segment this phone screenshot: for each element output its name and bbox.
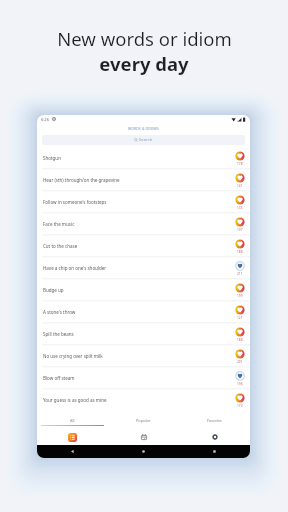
staticText: 141 bbox=[237, 184, 243, 188]
staticText: 107 bbox=[237, 228, 243, 232]
staticText: A stone's throw bbox=[43, 309, 76, 315]
staticText: Spill the beans bbox=[43, 331, 74, 337]
button[interactable]: Have a chip on one's shoulder bbox=[37, 257, 250, 279]
staticText: every day bbox=[99, 51, 189, 76]
button[interactable]: Follow in someone's footsteps bbox=[37, 191, 250, 213]
staticText: Favorite bbox=[207, 418, 222, 423]
staticText: Budge up bbox=[43, 287, 64, 293]
button[interactable]: All bbox=[37, 411, 108, 426]
button[interactable]: Popular bbox=[108, 411, 179, 426]
button[interactable]: Budge up bbox=[37, 279, 250, 301]
staticText: Search bbox=[139, 137, 153, 143]
staticText: 121 bbox=[237, 316, 243, 320]
button[interactable]: Hear (sth) through/on the grapevine bbox=[37, 169, 250, 191]
button[interactable]: Search bbox=[42, 135, 245, 145]
staticText: New words or idiom bbox=[57, 26, 232, 51]
staticText: Face the music bbox=[43, 221, 75, 227]
staticText: WORDS & IDIOMS bbox=[128, 126, 159, 130]
staticText: 135 bbox=[237, 206, 243, 210]
staticText: Blow off steam bbox=[43, 375, 75, 381]
button[interactable]: No use crying over spilt milk bbox=[37, 345, 250, 367]
staticText: Shotgun bbox=[43, 155, 61, 161]
staticText: Hear (sth) through/on the grapevine bbox=[43, 177, 120, 183]
button[interactable]: Home bbox=[108, 449, 179, 454]
button[interactable]: Spill the beans bbox=[37, 323, 250, 345]
button[interactable]: Settings bbox=[179, 429, 250, 445]
staticText: Your guess is as good as mine bbox=[43, 397, 107, 403]
staticText: 188 bbox=[237, 250, 243, 254]
button[interactable]: Favorite bbox=[179, 411, 250, 426]
staticText: Follow in someone's footsteps bbox=[43, 199, 107, 205]
staticText: 196 bbox=[237, 382, 243, 386]
staticText: Popular bbox=[136, 418, 151, 423]
button[interactable]: Cut to the chase bbox=[37, 235, 250, 257]
staticText: Have a chip on one's shoulder bbox=[43, 265, 107, 271]
staticText: No use crying over spilt milk bbox=[43, 353, 103, 359]
staticText: All bbox=[70, 418, 75, 423]
staticText: 211 bbox=[237, 272, 243, 276]
button[interactable]: A stone's throw bbox=[37, 301, 250, 323]
button[interactable]: Your guess is as good as mine bbox=[37, 389, 250, 411]
button[interactable]: Recents bbox=[179, 449, 250, 454]
staticText: 6:26 bbox=[41, 117, 49, 122]
staticText: Cut to the chase bbox=[43, 243, 78, 249]
staticText: 201 bbox=[237, 360, 243, 364]
staticText: 178 bbox=[237, 162, 243, 166]
button[interactable]: Back bbox=[37, 449, 108, 454]
button[interactable]: Words list bbox=[37, 429, 108, 445]
button[interactable]: Shotgun bbox=[37, 147, 250, 169]
staticText: 188 bbox=[237, 338, 243, 342]
button[interactable]: Face the music bbox=[37, 213, 250, 235]
button[interactable]: Calendar bbox=[108, 429, 179, 445]
staticText: 173 bbox=[237, 404, 243, 408]
button[interactable]: Blow off steam bbox=[37, 367, 250, 389]
staticText: 199 bbox=[237, 294, 243, 298]
